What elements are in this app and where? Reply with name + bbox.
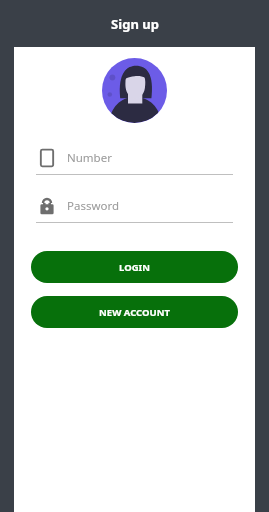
staticText: Number [67,150,112,166]
staticText: NEW ACCOUNT [99,306,170,319]
button[interactable]: Password [36,195,233,223]
button[interactable]: NEW ACCOUNT [31,296,238,328]
button[interactable]: Number [36,147,233,175]
staticText: Password [67,198,120,214]
button[interactable]: Profile picture [102,58,167,123]
button[interactable]: LOGIN [31,251,238,283]
staticText: LOGIN [119,261,150,274]
staticText: Sign up [111,15,159,33]
